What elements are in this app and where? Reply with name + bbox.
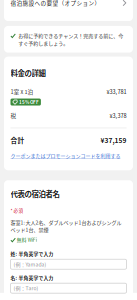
staticText: クーポンまたはプロモーションコードを利用する xyxy=(10,152,120,159)
staticText: 客室1: 大人2名、ダブルベッド1台およびシングルベッド1台、禁煙 xyxy=(10,219,121,233)
staticText: 税 xyxy=(10,112,16,120)
button[interactable]: クーポンまたはプロモーションコードを利用する xyxy=(10,152,120,159)
staticText: 料金の詳細 xyxy=(10,68,45,78)
staticText: ¥3,378 xyxy=(109,112,126,120)
staticText: * 必須 xyxy=(10,207,23,214)
button[interactable]: 宿泊施設への要望（オプション） xyxy=(4,0,133,21)
staticText: (例：Taro) xyxy=(13,284,38,292)
staticText: 代表の宿泊者名 xyxy=(10,188,59,199)
staticText: 姓: 半角英字で入力 xyxy=(10,250,53,257)
staticText: 宿泊施設への要望（オプション） xyxy=(10,0,100,7)
staticText: 名: 半角英字で入力 xyxy=(10,274,53,281)
staticText: お得に予約できるチャンス！完売する前に、今すぐ予約しましょう。 xyxy=(18,32,123,47)
staticText: 15% OFF xyxy=(19,99,39,105)
staticText: 1室 x 1泊 xyxy=(10,87,33,95)
staticText: 合計 xyxy=(10,135,24,145)
staticText: ¥37,159 xyxy=(100,135,126,145)
staticText: (例：Yamada) xyxy=(13,260,46,268)
staticText: 無料 WiFi xyxy=(17,236,37,243)
staticText: ¥33,781 xyxy=(106,87,126,95)
